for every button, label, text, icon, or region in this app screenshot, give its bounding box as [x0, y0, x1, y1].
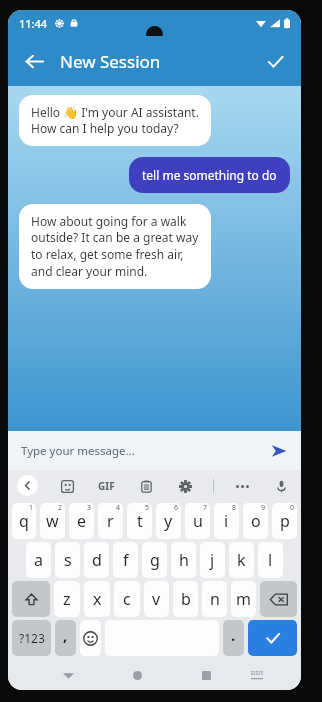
- staticText: How about going for a walk outside? It c…: [31, 213, 199, 280]
- button[interactable]: Type your message...: [21, 443, 135, 459]
- staticText: y: [164, 510, 173, 532]
- button[interactable]: Switch keyboard: [245, 663, 269, 687]
- staticText: w: [46, 510, 59, 532]
- staticText: s: [64, 549, 72, 571]
- button[interactable]: n: [202, 581, 227, 617]
- button[interactable]: ,: [55, 620, 76, 656]
- staticText: f: [123, 549, 129, 571]
- staticText: 3: [87, 503, 92, 513]
- button[interactable]: r: [98, 503, 123, 539]
- button[interactable]: tell me something to do: [129, 157, 290, 193]
- button[interactable]: q: [12, 503, 36, 539]
- button[interactable]: Backspace: [260, 581, 297, 617]
- staticText: New Session: [60, 50, 161, 73]
- staticText: Hello 👋 I'm your AI assistant. How can I…: [31, 104, 199, 137]
- button[interactable]: Voice input: [270, 475, 292, 497]
- staticText: 6: [174, 503, 179, 513]
- button[interactable]: Hide keyboard: [56, 663, 80, 687]
- staticText: j: [210, 549, 215, 571]
- button[interactable]: s: [55, 542, 80, 578]
- staticText: a: [34, 549, 43, 571]
- staticText: 1: [29, 503, 34, 513]
- staticText: c: [123, 588, 131, 610]
- button[interactable]: Home: [125, 663, 149, 687]
- button[interactable]: h: [171, 542, 196, 578]
- button[interactable]: m: [231, 581, 256, 617]
- button[interactable]: Clipboard: [135, 475, 157, 497]
- button[interactable]: Settings: [174, 475, 196, 497]
- staticText: d: [92, 549, 102, 571]
- button[interactable]: Shift: [12, 581, 50, 617]
- button[interactable]: b: [173, 581, 198, 617]
- staticText: g: [150, 549, 160, 571]
- button[interactable]: More options: [231, 475, 253, 497]
- staticText: t: [137, 510, 143, 532]
- button[interactable]: .: [223, 620, 244, 656]
- staticText: k: [237, 549, 246, 571]
- staticText: .: [231, 625, 236, 645]
- button[interactable]: g: [142, 542, 167, 578]
- button[interactable]: x: [84, 581, 110, 617]
- staticText: tell me something to do: [142, 167, 277, 183]
- staticText: z: [63, 588, 71, 610]
- staticText: x: [93, 588, 102, 610]
- staticText: n: [210, 588, 220, 610]
- button[interactable]: e: [69, 503, 94, 539]
- staticText: 5: [145, 503, 150, 513]
- staticText: o: [251, 510, 261, 532]
- button[interactable]: k: [229, 542, 254, 578]
- staticText: ?123: [19, 630, 45, 646]
- button[interactable]: z: [54, 581, 80, 617]
- button[interactable]: l: [258, 542, 283, 578]
- staticText: 2: [58, 503, 63, 513]
- button[interactable]: Send: [264, 436, 294, 466]
- button[interactable]: p: [272, 503, 297, 539]
- button[interactable]: f: [113, 542, 138, 578]
- staticText: GIF: [98, 479, 115, 493]
- button[interactable]: Confirm: [257, 43, 293, 79]
- button[interactable]: GIF: [95, 479, 118, 493]
- staticText: b: [181, 588, 191, 610]
- staticText: e: [77, 510, 87, 532]
- staticText: q: [19, 510, 29, 532]
- staticText: 9: [261, 503, 266, 513]
- button[interactable]: c: [114, 581, 140, 617]
- button[interactable]: i: [214, 503, 239, 539]
- staticText: h: [179, 549, 189, 571]
- button[interactable]: w: [40, 503, 65, 539]
- button[interactable]: j: [200, 542, 225, 578]
- button[interactable]: y: [156, 503, 181, 539]
- button[interactable]: Emoji: [80, 620, 101, 656]
- button[interactable]: Recents: [194, 663, 218, 687]
- staticText: 0: [290, 503, 295, 513]
- button[interactable]: a: [26, 542, 51, 578]
- staticText: u: [193, 510, 203, 532]
- staticText: l: [268, 549, 273, 571]
- staticText: 4: [116, 503, 121, 513]
- button[interactable]: d: [84, 542, 109, 578]
- button[interactable]: Hello 👋 I'm your AI assistant. How can I…: [19, 95, 211, 146]
- staticText: m: [236, 588, 251, 610]
- staticText: 7: [203, 503, 208, 513]
- button[interactable]: u: [185, 503, 210, 539]
- staticText: ,: [63, 625, 68, 645]
- staticText: r: [107, 510, 114, 532]
- button[interactable]: Back: [16, 43, 52, 79]
- staticText: v: [152, 588, 161, 610]
- button[interactable]: t: [127, 503, 152, 539]
- staticText: i: [224, 510, 229, 532]
- button[interactable]: Stickers: [56, 475, 78, 497]
- staticText: 8: [232, 503, 237, 513]
- staticText: p: [280, 510, 290, 532]
- button[interactable]: Back: [17, 475, 38, 496]
- button[interactable]: o: [243, 503, 268, 539]
- button[interactable]: v: [144, 581, 169, 617]
- staticText: 11:44: [19, 16, 48, 31]
- button[interactable]: ?123: [12, 620, 51, 656]
- button[interactable]: Enter: [248, 620, 297, 656]
- button[interactable]: How about going for a walk outside? It c…: [19, 204, 211, 289]
